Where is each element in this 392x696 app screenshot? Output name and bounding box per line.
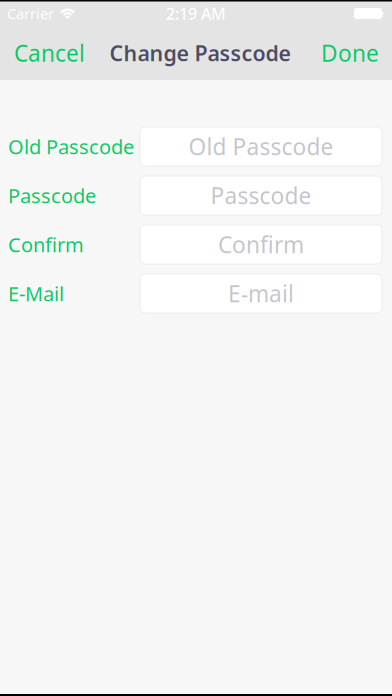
button[interactable]: Passcode	[140, 176, 382, 215]
button[interactable]: E-Mail	[140, 274, 382, 313]
staticText: Confirm	[8, 231, 84, 258]
staticText: 2:19 AM	[166, 3, 226, 24]
button[interactable]: Old Passcode	[140, 127, 382, 166]
staticText: Confirm	[218, 229, 304, 259]
button[interactable]: Cancel	[0, 25, 100, 80]
staticText: Old Passcode	[8, 133, 134, 160]
staticText: Change Passcode	[109, 39, 290, 67]
staticText: Passcode	[8, 182, 96, 209]
staticText: E-mail	[228, 278, 294, 308]
staticText: E-Mail	[8, 280, 64, 307]
staticText: Cancel	[14, 38, 85, 68]
button[interactable]: Done	[292, 25, 392, 80]
staticText: Carrier	[7, 4, 54, 23]
staticText: Passcode	[210, 180, 311, 210]
staticText: Old Passcode	[188, 131, 333, 161]
staticText: Done	[321, 38, 379, 68]
button[interactable]: Confirm	[140, 225, 382, 264]
